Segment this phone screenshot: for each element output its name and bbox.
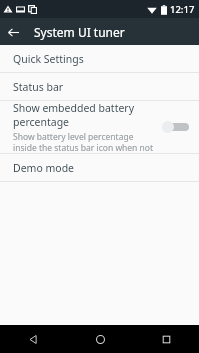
button[interactable]: Recent apps	[133, 325, 199, 353]
button[interactable]: Status bar	[0, 73, 199, 100]
button[interactable]: Show embedded battery percentage toggle	[161, 117, 191, 137]
staticText: System UI tuner	[34, 24, 125, 40]
button[interactable]: Demo mode	[0, 154, 199, 181]
staticText: Show battery level percentage inside the…	[13, 131, 155, 153]
staticText: 12:17	[170, 3, 195, 16]
staticText: Demo mode	[13, 161, 75, 175]
staticText: Show embedded battery percentage	[13, 101, 155, 129]
button[interactable]: Back	[0, 19, 26, 45]
button[interactable]: Home	[67, 325, 133, 353]
button[interactable]: Back	[0, 325, 67, 353]
button[interactable]: Quick Settings	[0, 45, 199, 72]
staticText: Status bar	[13, 80, 64, 94]
button[interactable]: Show embedded battery percentage	[0, 101, 199, 153]
staticText: Quick Settings	[13, 52, 84, 66]
